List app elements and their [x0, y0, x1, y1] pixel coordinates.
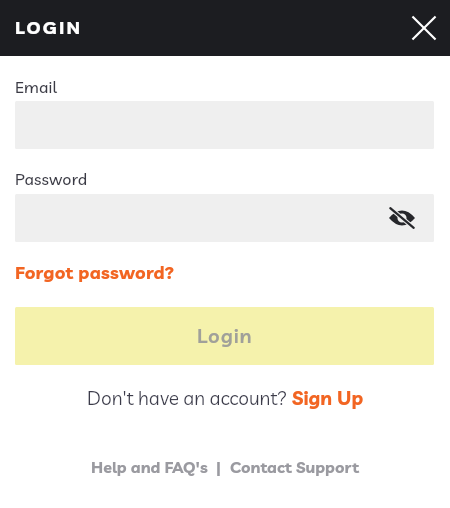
- staticText: Login: [197, 323, 253, 348]
- button[interactable]: Close: [400, 4, 448, 52]
- button[interactable]: Login: [15, 307, 434, 365]
- staticText: Forgot password?: [15, 261, 175, 284]
- staticText: Don't have an account?: [87, 386, 292, 410]
- button[interactable]: Show password: [386, 202, 418, 234]
- staticText: Email: [15, 77, 58, 97]
- staticText: Password: [15, 169, 88, 189]
- staticText: |: [208, 457, 230, 477]
- staticText: Help and FAQ's: [91, 457, 208, 477]
- button[interactable]: Help and FAQ's: [91, 457, 208, 477]
- staticText: Sign Up: [292, 386, 364, 410]
- button[interactable]: Sign Up: [292, 386, 364, 410]
- button[interactable]: Show password: [15, 194, 434, 242]
- staticText: Contact Support: [230, 457, 359, 477]
- button[interactable]: Forgot password?: [15, 261, 175, 284]
- staticText: LOGIN: [15, 16, 83, 39]
- button[interactable]: Contact Support: [230, 457, 359, 477]
